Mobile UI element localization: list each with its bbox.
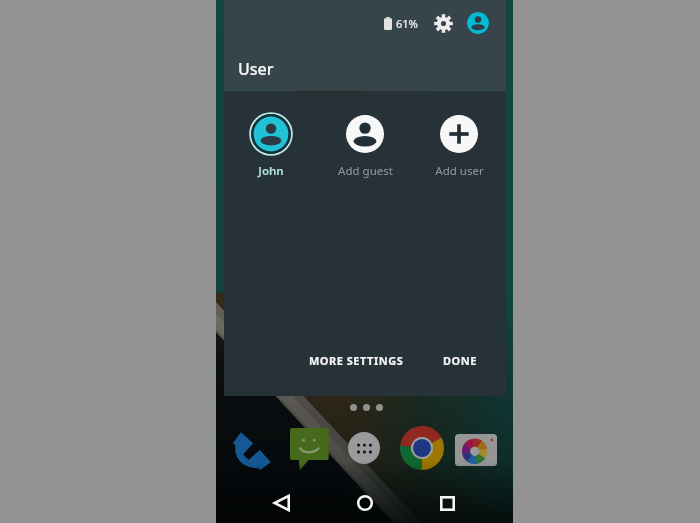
button[interactable]: Settings [432,12,454,34]
button[interactable]: Camera [455,434,497,466]
staticText: User [238,58,274,80]
button[interactable]: Messaging [289,427,333,471]
button[interactable]: Add guest [318,110,412,181]
staticText: John [258,163,284,179]
staticText: Add user [435,163,484,179]
staticText: DONE [443,353,477,368]
button[interactable]: MORE SETTINGS [303,347,410,374]
button[interactable]: Phone [233,426,277,470]
staticText: Add guest [338,163,393,179]
staticText: 61% [396,16,418,31]
button[interactable]: Home [349,487,381,519]
button[interactable]: Add user [412,110,506,181]
staticText: MORE SETTINGS [309,353,404,368]
button[interactable]: Recents [431,487,463,519]
button[interactable]: DONE [437,347,483,374]
button[interactable]: Chrome [400,426,444,470]
button[interactable]: Current user [467,12,489,34]
button[interactable]: Back [266,487,298,519]
button[interactable]: Apps [348,432,380,464]
button[interactable]: John [224,110,318,181]
